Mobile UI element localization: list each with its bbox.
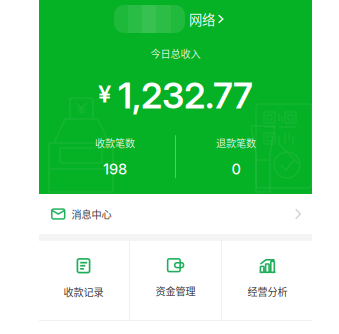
button[interactable]: 网络 xyxy=(185,5,223,33)
staticText: 0 xyxy=(231,160,240,178)
staticText: 198 xyxy=(103,160,127,178)
staticText: 网络 xyxy=(189,9,215,29)
staticText: ¥ xyxy=(98,79,111,108)
button[interactable]: 资金管理 xyxy=(130,241,221,320)
staticText: 经营分析 xyxy=(247,284,287,299)
staticText: 1,232.77 xyxy=(118,74,253,117)
staticText: 收款笔数 xyxy=(95,135,135,150)
button[interactable]: 收款记录 xyxy=(38,241,129,320)
staticText: 退款笔数 xyxy=(216,135,256,150)
button[interactable]: 经营分析 xyxy=(222,241,313,320)
button[interactable]: 消息中心 xyxy=(39,194,312,234)
staticText: 今日总收入 xyxy=(150,46,200,61)
staticText: 资金管理 xyxy=(155,283,195,298)
staticText: 消息中心 xyxy=(71,207,111,221)
staticText: 收款记录 xyxy=(63,284,103,299)
